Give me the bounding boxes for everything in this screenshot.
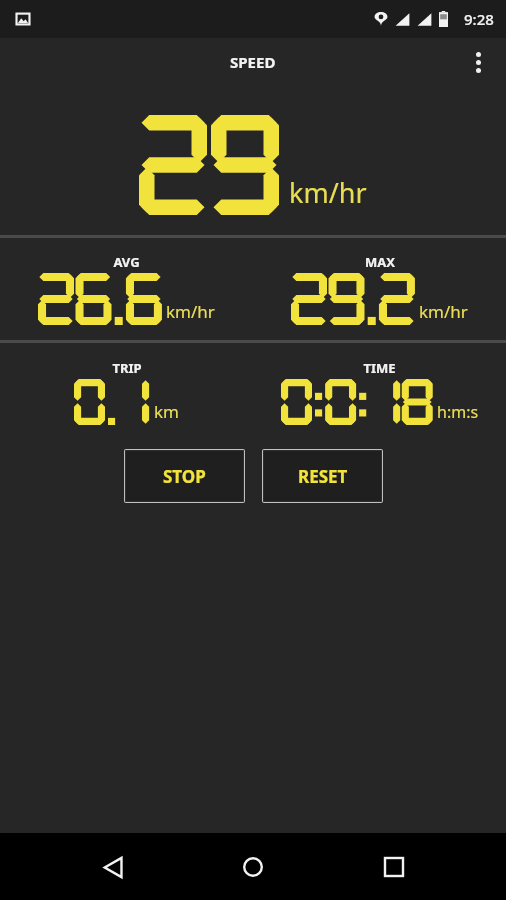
staticText: 9:28 xyxy=(464,9,494,29)
staticText: km xyxy=(154,400,179,423)
staticText: TIME xyxy=(363,359,396,377)
button[interactable]: More options xyxy=(456,40,500,84)
staticText: AVG xyxy=(113,253,140,271)
staticText: MAX xyxy=(365,253,395,271)
staticText: TRIP xyxy=(112,359,142,377)
button[interactable]: STOP xyxy=(124,449,245,503)
staticText: STOP xyxy=(163,465,206,488)
button[interactable]: RESET xyxy=(262,449,383,503)
staticText: h:m:s xyxy=(437,401,479,423)
staticText: km/hr xyxy=(166,300,215,323)
button[interactable]: Home xyxy=(225,839,281,895)
button[interactable]: Recent apps xyxy=(366,839,422,895)
staticText: km/hr xyxy=(419,300,468,323)
staticText: SPEED xyxy=(230,52,276,72)
button[interactable]: Back xyxy=(85,839,141,895)
staticText: RESET xyxy=(298,465,348,488)
staticText: km/hr xyxy=(289,174,367,211)
